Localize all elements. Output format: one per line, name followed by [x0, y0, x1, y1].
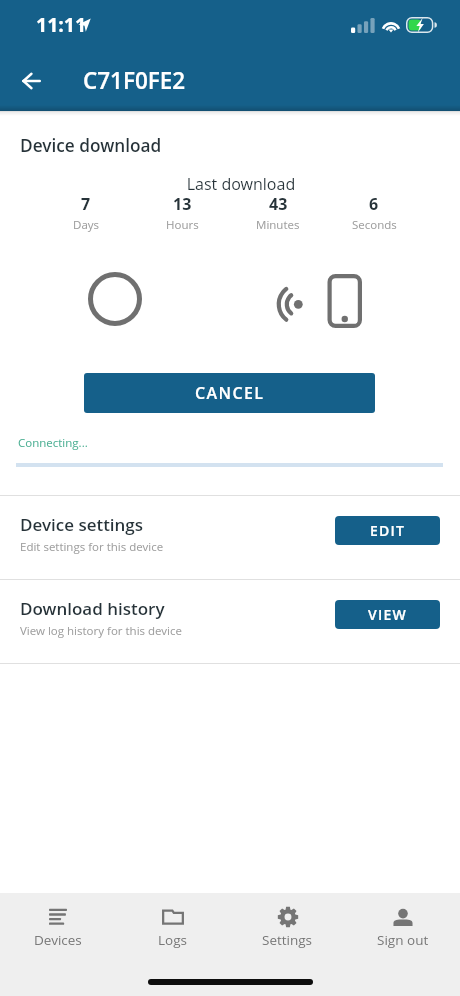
staticText: Seconds	[352, 217, 397, 233]
staticText: View log history for this device	[20, 623, 182, 639]
staticText: 7	[81, 193, 91, 215]
button[interactable]: Sign out	[345, 893, 460, 951]
button[interactable]: Devices	[0, 893, 115, 951]
staticText: Settings	[262, 931, 313, 949]
staticText: Sign out	[377, 931, 429, 949]
button[interactable]: EDIT	[335, 516, 440, 545]
staticText: 13	[173, 193, 192, 215]
staticText: Device download	[20, 134, 162, 157]
staticText: EDIT	[370, 521, 406, 540]
button[interactable]: CANCEL	[84, 373, 375, 413]
staticText: Devices	[34, 931, 82, 949]
staticText: Connecting...	[18, 435, 88, 451]
staticText: 11:11	[36, 11, 87, 38]
staticText: Minutes	[256, 217, 300, 233]
button[interactable]: Settings	[230, 893, 345, 951]
staticText: Download history	[20, 597, 165, 620]
button[interactable]: Device settings	[0, 496, 460, 579]
staticText: Hours	[166, 217, 199, 233]
staticText: VIEW	[368, 605, 407, 624]
button[interactable]: VIEW	[335, 600, 440, 629]
staticText: 43	[269, 193, 288, 215]
staticText: Logs	[158, 931, 187, 949]
staticText: Edit settings for this device	[20, 539, 164, 555]
staticText: Last download	[22, 173, 460, 195]
staticText: 6	[369, 193, 379, 215]
staticText: C71F0FE2	[83, 65, 186, 96]
button[interactable]: Download history	[0, 580, 460, 663]
button[interactable]: Back	[9, 58, 54, 103]
staticText: Days	[73, 217, 100, 233]
staticText: CANCEL	[195, 382, 265, 404]
button[interactable]: Logs	[115, 893, 230, 951]
staticText: Device settings	[20, 513, 144, 536]
